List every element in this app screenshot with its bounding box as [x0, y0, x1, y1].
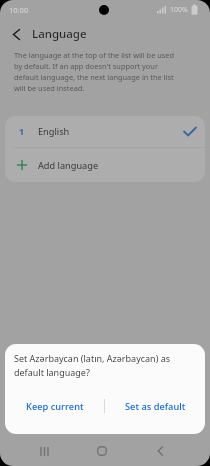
- button[interactable]: [33, 439, 57, 463]
- staticText: The language at the top of the list will…: [14, 50, 175, 93]
- staticText: Set Azərbaycan (latın, Azərbaycan) as de…: [14, 352, 171, 379]
- staticText: Add language: [38, 159, 99, 172]
- staticText: English: [38, 125, 70, 138]
- staticText: Language: [32, 26, 87, 42]
- staticText: 10:00: [9, 5, 29, 15]
- staticText: 100%: [170, 5, 188, 15]
- button[interactable]: Add language: [5, 148, 205, 182]
- button[interactable]: Language: [0, 22, 210, 46]
- button[interactable]: [148, 439, 172, 463]
- staticText: Keep current: [26, 400, 84, 413]
- staticText: 1: [19, 126, 25, 138]
- button[interactable]: [90, 439, 114, 463]
- button[interactable]: Keep current: [5, 391, 104, 421]
- button[interactable]: 1: [5, 116, 205, 147]
- button[interactable]: Set as default: [105, 391, 205, 421]
- staticText: Set as default: [125, 400, 186, 413]
